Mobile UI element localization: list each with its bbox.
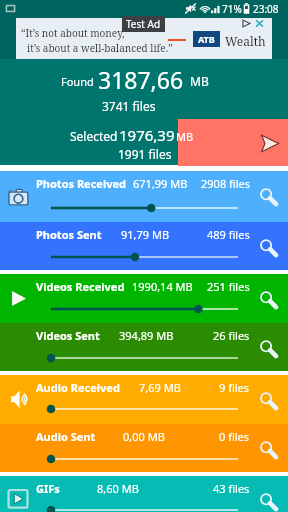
staticText: “It’s not about money, [21, 26, 125, 40]
button[interactable]: Search [254, 183, 280, 209]
staticText: 9 files [219, 380, 250, 395]
button[interactable]: “It’s not about money, [16, 18, 272, 59]
staticText: 1976,39 [119, 125, 175, 145]
staticText: 23:08 [253, 2, 279, 16]
button[interactable]: Send selected files [178, 119, 288, 166]
button[interactable]: Videos Sent [0, 323, 288, 371]
staticText: 43 files [213, 481, 250, 496]
staticText: 0,00 MB [123, 429, 165, 444]
staticText: 91,79 MB [121, 227, 170, 242]
staticText: 1990,14 MB [132, 279, 193, 294]
button[interactable]: Photos Sent [0, 222, 288, 270]
staticText: 394,89 MB [119, 328, 174, 343]
staticText: Photos Sent [36, 227, 102, 242]
staticText: 671,99 MB [133, 176, 188, 191]
staticText: Selected [70, 128, 118, 144]
staticText: Videos Received [36, 279, 125, 294]
staticText: 251 files [207, 279, 250, 294]
staticText: 8,60 MB [97, 481, 139, 496]
staticText: 71% [222, 2, 242, 16]
staticText: ATB [198, 33, 215, 45]
button[interactable]: Search [254, 488, 280, 512]
button[interactable]: Search [254, 286, 280, 312]
staticText: Found [61, 74, 94, 89]
staticText: 489 files [207, 227, 250, 242]
staticText: 0 files [219, 429, 250, 444]
button[interactable]: Audio Received [0, 375, 288, 424]
staticText: 3187,66 [98, 64, 184, 95]
button[interactable]: Audio Sent [0, 424, 288, 472]
button[interactable]: Search [254, 335, 280, 361]
button[interactable]: Search [254, 436, 280, 462]
staticText: 7,69 MB [139, 380, 181, 395]
button[interactable]: Search [254, 387, 280, 413]
staticText: Audio Received [36, 380, 120, 395]
staticText: Audio Sent [36, 429, 96, 444]
button[interactable]: Search [254, 234, 280, 260]
button[interactable]: Videos Received [0, 274, 288, 323]
staticText: MB [176, 129, 194, 144]
staticText: 3741 files [102, 98, 156, 114]
button[interactable]: Photos Received [0, 171, 288, 222]
staticText: Wealth [225, 33, 266, 49]
staticText: GIFs [36, 481, 60, 496]
staticText: 1991 files [118, 146, 172, 162]
staticText: Photos Received [36, 176, 127, 191]
staticText: Videos Sent [36, 328, 100, 343]
staticText: 2908 files [201, 176, 250, 191]
staticText: 26 files [213, 328, 250, 343]
staticText: MB [190, 73, 209, 89]
button[interactable]: GIFs [0, 476, 288, 512]
staticText: it’s about a well-balanced life.” [27, 41, 173, 55]
staticText: Test Ad [126, 17, 161, 31]
